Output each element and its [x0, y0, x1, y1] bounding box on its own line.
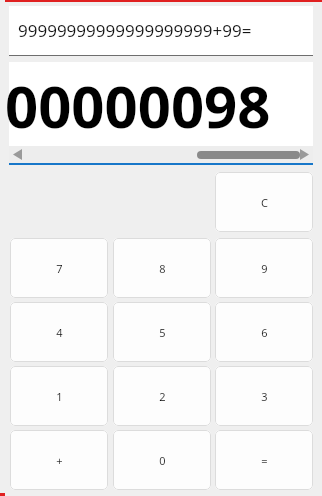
button[interactable]: + [10, 430, 108, 490]
staticText: 8 [159, 261, 166, 276]
button[interactable]: 9 [215, 238, 313, 298]
button[interactable]: 4 [10, 302, 108, 362]
staticText: C [261, 195, 268, 210]
staticText: 1 [56, 389, 63, 404]
button[interactable]: 7 [10, 238, 108, 298]
button[interactable]: 2 [113, 366, 211, 426]
staticText: 4 [56, 325, 63, 340]
staticText: = [261, 453, 268, 468]
button[interactable]: 8 [113, 238, 211, 298]
button[interactable]: Scroll left [13, 149, 22, 160]
staticText: 9 [261, 261, 268, 276]
button[interactable]: Scroll right [300, 149, 309, 160]
staticText: 0 [159, 453, 166, 468]
button[interactable]: 6 [215, 302, 313, 362]
staticText: 5 [159, 325, 166, 340]
button[interactable]: 3 [215, 366, 313, 426]
staticText: 7 [56, 261, 63, 276]
staticText: 99999999999999999999+99= [18, 19, 252, 42]
button[interactable]: C [215, 172, 313, 232]
button[interactable]: 0 [113, 430, 211, 490]
button[interactable]: = [215, 430, 313, 490]
staticText: 3 [261, 389, 268, 404]
button[interactable] [197, 151, 300, 159]
button[interactable]: 5 [113, 302, 211, 362]
button[interactable]: 1 [10, 366, 108, 426]
staticText: 6 [261, 325, 268, 340]
staticText: + [56, 453, 63, 468]
staticText: 00000098 [5, 66, 271, 145]
staticText: 2 [159, 389, 166, 404]
